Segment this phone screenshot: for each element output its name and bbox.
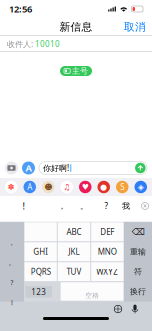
staticText: ，	[8, 239, 15, 247]
button[interactable]: ，	[1, 233, 23, 253]
button[interactable]: ABC	[58, 222, 90, 241]
staticText: A	[25, 162, 31, 174]
staticText: MNO	[98, 246, 117, 257]
staticText: 我	[122, 201, 130, 211]
button[interactable]: App	[79, 181, 91, 193]
staticText: ?	[10, 278, 13, 287]
button[interactable]: Camera	[5, 161, 18, 174]
staticText: S	[120, 182, 124, 192]
button[interactable]: !	[1, 293, 23, 313]
staticText: WXYZ	[96, 266, 118, 277]
staticText: ×	[143, 202, 147, 210]
button[interactable]: App	[97, 181, 110, 193]
staticText: !	[22, 200, 25, 212]
staticText: GHI	[33, 246, 48, 257]
staticText: ?	[104, 201, 107, 211]
button[interactable]: App	[116, 181, 128, 193]
button[interactable]: 符	[124, 262, 151, 281]
button[interactable]: App	[42, 181, 54, 193]
staticText: ♫	[63, 182, 70, 192]
button[interactable]: Dictate	[128, 302, 142, 316]
button[interactable]: App	[60, 181, 73, 193]
button[interactable]: 取消	[122, 19, 148, 35]
staticText: ♥	[82, 182, 89, 192]
button[interactable]: Switch keyboard	[111, 302, 125, 316]
button[interactable]: App	[23, 181, 36, 193]
staticText: 。	[80, 201, 88, 211]
button[interactable]: GHI	[25, 242, 57, 261]
staticText: 空格	[85, 291, 99, 300]
button[interactable]	[25, 222, 57, 241]
staticText: 12:56	[9, 3, 32, 15]
staticText: 符	[134, 267, 142, 277]
button[interactable]: TUV	[58, 262, 90, 281]
staticText: ●	[100, 182, 107, 192]
button[interactable]: 重输	[124, 242, 151, 261]
staticText: ✽	[8, 182, 15, 192]
staticText: 你好啊!	[43, 163, 69, 173]
staticText: 取消	[124, 20, 146, 33]
staticText: DEF	[100, 226, 114, 237]
staticText: ☻	[44, 182, 52, 192]
button[interactable]: DEF	[91, 222, 123, 241]
staticText: 123	[31, 286, 46, 297]
staticText: PQRS	[31, 266, 51, 277]
button[interactable]: ⌫	[124, 222, 151, 241]
button[interactable]: 换行	[124, 282, 151, 301]
button[interactable]: App	[134, 181, 147, 193]
staticText: 收件人:	[7, 39, 33, 49]
button[interactable]: PQRS	[25, 262, 57, 281]
staticText: ⌫	[131, 226, 144, 237]
staticText: TUV	[66, 266, 81, 277]
staticText: ABC	[66, 226, 81, 237]
staticText: 主号	[72, 66, 88, 76]
staticText: 。	[8, 259, 15, 267]
staticText: ◈	[138, 182, 144, 192]
staticText: 重输	[130, 247, 146, 257]
staticText: 换行	[130, 287, 146, 296]
button[interactable]: 123	[25, 286, 52, 298]
button[interactable]: MNO	[91, 242, 123, 261]
staticText: JKL	[68, 246, 79, 257]
button[interactable]: Dismiss	[140, 201, 149, 210]
staticText: 新信息	[59, 20, 92, 33]
staticText: ，	[58, 201, 66, 211]
button[interactable]: 。	[1, 253, 23, 273]
button[interactable]	[61, 282, 123, 301]
staticText: !	[11, 298, 13, 307]
button[interactable]: ?	[1, 273, 23, 293]
staticText: 10010	[35, 39, 60, 49]
button[interactable]: WXYZ	[91, 262, 123, 281]
button[interactable]: Apps	[22, 161, 35, 174]
button[interactable]: Send	[135, 163, 146, 173]
staticText: A	[27, 182, 32, 192]
button[interactable]: JKL	[58, 242, 90, 261]
button[interactable]: App	[5, 181, 17, 193]
